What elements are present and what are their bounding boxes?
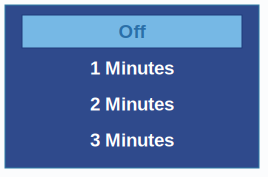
button[interactable]: 1 Minutes [5, 50, 259, 86]
button[interactable]: 3 Minutes [5, 122, 259, 158]
staticText: 2 Minutes [90, 94, 174, 114]
staticText: 1 Minutes [90, 58, 174, 78]
staticText: Off [118, 21, 145, 42]
staticText: 3 Minutes [90, 130, 174, 150]
button[interactable]: 2 Minutes [5, 86, 259, 122]
button[interactable]: Off [22, 15, 242, 48]
